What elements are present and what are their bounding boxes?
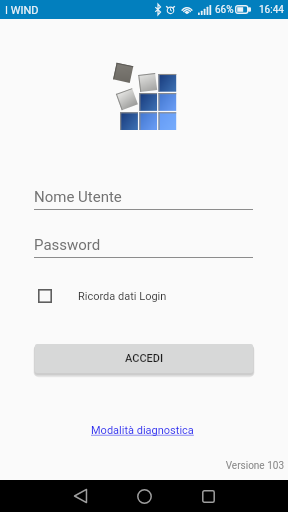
staticText: Modalità diagnostica xyxy=(91,424,194,437)
button[interactable]: Recent apps xyxy=(184,480,232,512)
staticText: 16:44 xyxy=(259,4,284,16)
staticText: Ricorda dati Login xyxy=(78,290,167,303)
staticText: I WIND xyxy=(5,4,39,17)
staticText: Password xyxy=(34,236,101,254)
button[interactable]: Home xyxy=(120,480,168,512)
staticText: ACCEDI xyxy=(125,352,164,365)
button[interactable]: Modalità diagnostica xyxy=(91,424,194,437)
button[interactable]: ACCEDI xyxy=(35,344,253,373)
staticText: Versione 103 xyxy=(0,460,284,472)
staticText: Nome Utente xyxy=(34,188,122,206)
button[interactable]: Back xyxy=(56,480,104,512)
staticText: 66% xyxy=(215,4,234,16)
button[interactable]: Ricorda dati Login xyxy=(30,284,175,308)
